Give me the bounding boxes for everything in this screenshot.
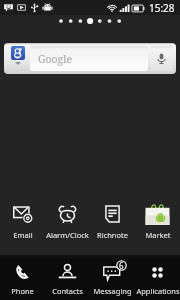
staticText: Phone bbox=[11, 286, 34, 296]
button[interactable]: Voice search bbox=[150, 46, 173, 71]
staticText: Richnote bbox=[97, 230, 128, 240]
staticText: Contacts bbox=[52, 286, 83, 296]
button[interactable]: Contacts bbox=[45, 263, 90, 296]
staticText: Market bbox=[145, 230, 171, 240]
button[interactable]: Richnote bbox=[90, 203, 135, 240]
button[interactable]: Alarm/Clock bbox=[45, 203, 90, 240]
staticText: Email bbox=[13, 230, 33, 240]
staticText: Messaging bbox=[93, 286, 132, 296]
button[interactable]: Market bbox=[135, 203, 180, 240]
staticText: Applications bbox=[136, 286, 180, 296]
button[interactable]: 6 bbox=[90, 263, 135, 296]
staticText: Alarm/Clock bbox=[46, 230, 89, 240]
button[interactable]: Google bbox=[7, 46, 29, 71]
button[interactable]: Google bbox=[30, 46, 148, 71]
staticText: 6 bbox=[119, 260, 124, 271]
staticText: 15:28 bbox=[149, 1, 175, 15]
button[interactable]: Phone bbox=[0, 263, 45, 296]
button[interactable]: Email bbox=[0, 203, 45, 240]
staticText: Google bbox=[38, 52, 73, 66]
button[interactable]: Applications bbox=[135, 263, 180, 296]
